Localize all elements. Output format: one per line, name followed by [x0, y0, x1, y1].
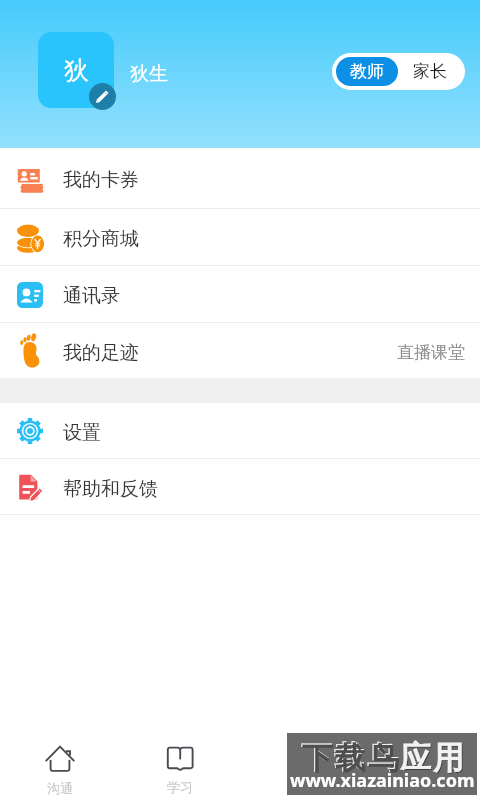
staticText: 家长 [413, 61, 447, 82]
staticText: 直播课堂 [397, 342, 465, 363]
button[interactable]: 积分商城 [0, 209, 480, 265]
button[interactable]: 通讯录 [0, 266, 480, 322]
button[interactable]: Edit avatar [89, 83, 116, 110]
button[interactable]: 学习 [120, 740, 240, 800]
button[interactable]: 教师 [336, 57, 398, 86]
staticText: 应用 [400, 739, 466, 778]
staticText: 帮助和反馈 [63, 477, 158, 501]
button[interactable]: 设置 [0, 403, 480, 458]
staticText: 学习 [167, 779, 193, 795]
button[interactable]: 我的足迹 [0, 323, 480, 378]
staticText: 通讯录 [63, 284, 120, 308]
button[interactable]: 沟通 [0, 740, 120, 800]
staticText: 我的卡券 [63, 168, 139, 192]
staticText: 设置 [63, 421, 101, 445]
staticText: 积分商城 [63, 227, 139, 251]
staticText: 狄生 [130, 62, 168, 86]
staticText: 教师 [350, 61, 384, 82]
staticText: 下载鸟 [300, 738, 399, 777]
staticText: 下载鸟 [301, 739, 400, 778]
staticText: 应用 [399, 738, 465, 777]
staticText: 狄 [64, 55, 89, 86]
staticText: 沟通 [47, 780, 73, 796]
staticText: www.xiazainiao.com [290, 768, 475, 793]
button[interactable]: 家长 [398, 57, 461, 86]
button[interactable]: 帮助和反馈 [0, 459, 480, 514]
button[interactable]: 我的卡券 [0, 148, 480, 208]
staticText: 我的足迹 [63, 341, 139, 365]
button[interactable]: 狄 [38, 32, 114, 108]
